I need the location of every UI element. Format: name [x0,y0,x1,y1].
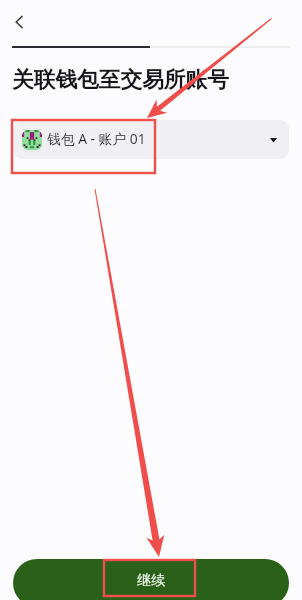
button[interactable]: Back [5,8,33,36]
staticText: 关联钱包至交易所账号 [12,66,229,93]
staticText: 继续 [137,572,165,590]
staticText: 钱包 A - 账户 01 [47,129,146,148]
button[interactable]: 继续 [13,559,289,600]
button[interactable]: 钱包 A - 账户 01 [13,120,289,159]
